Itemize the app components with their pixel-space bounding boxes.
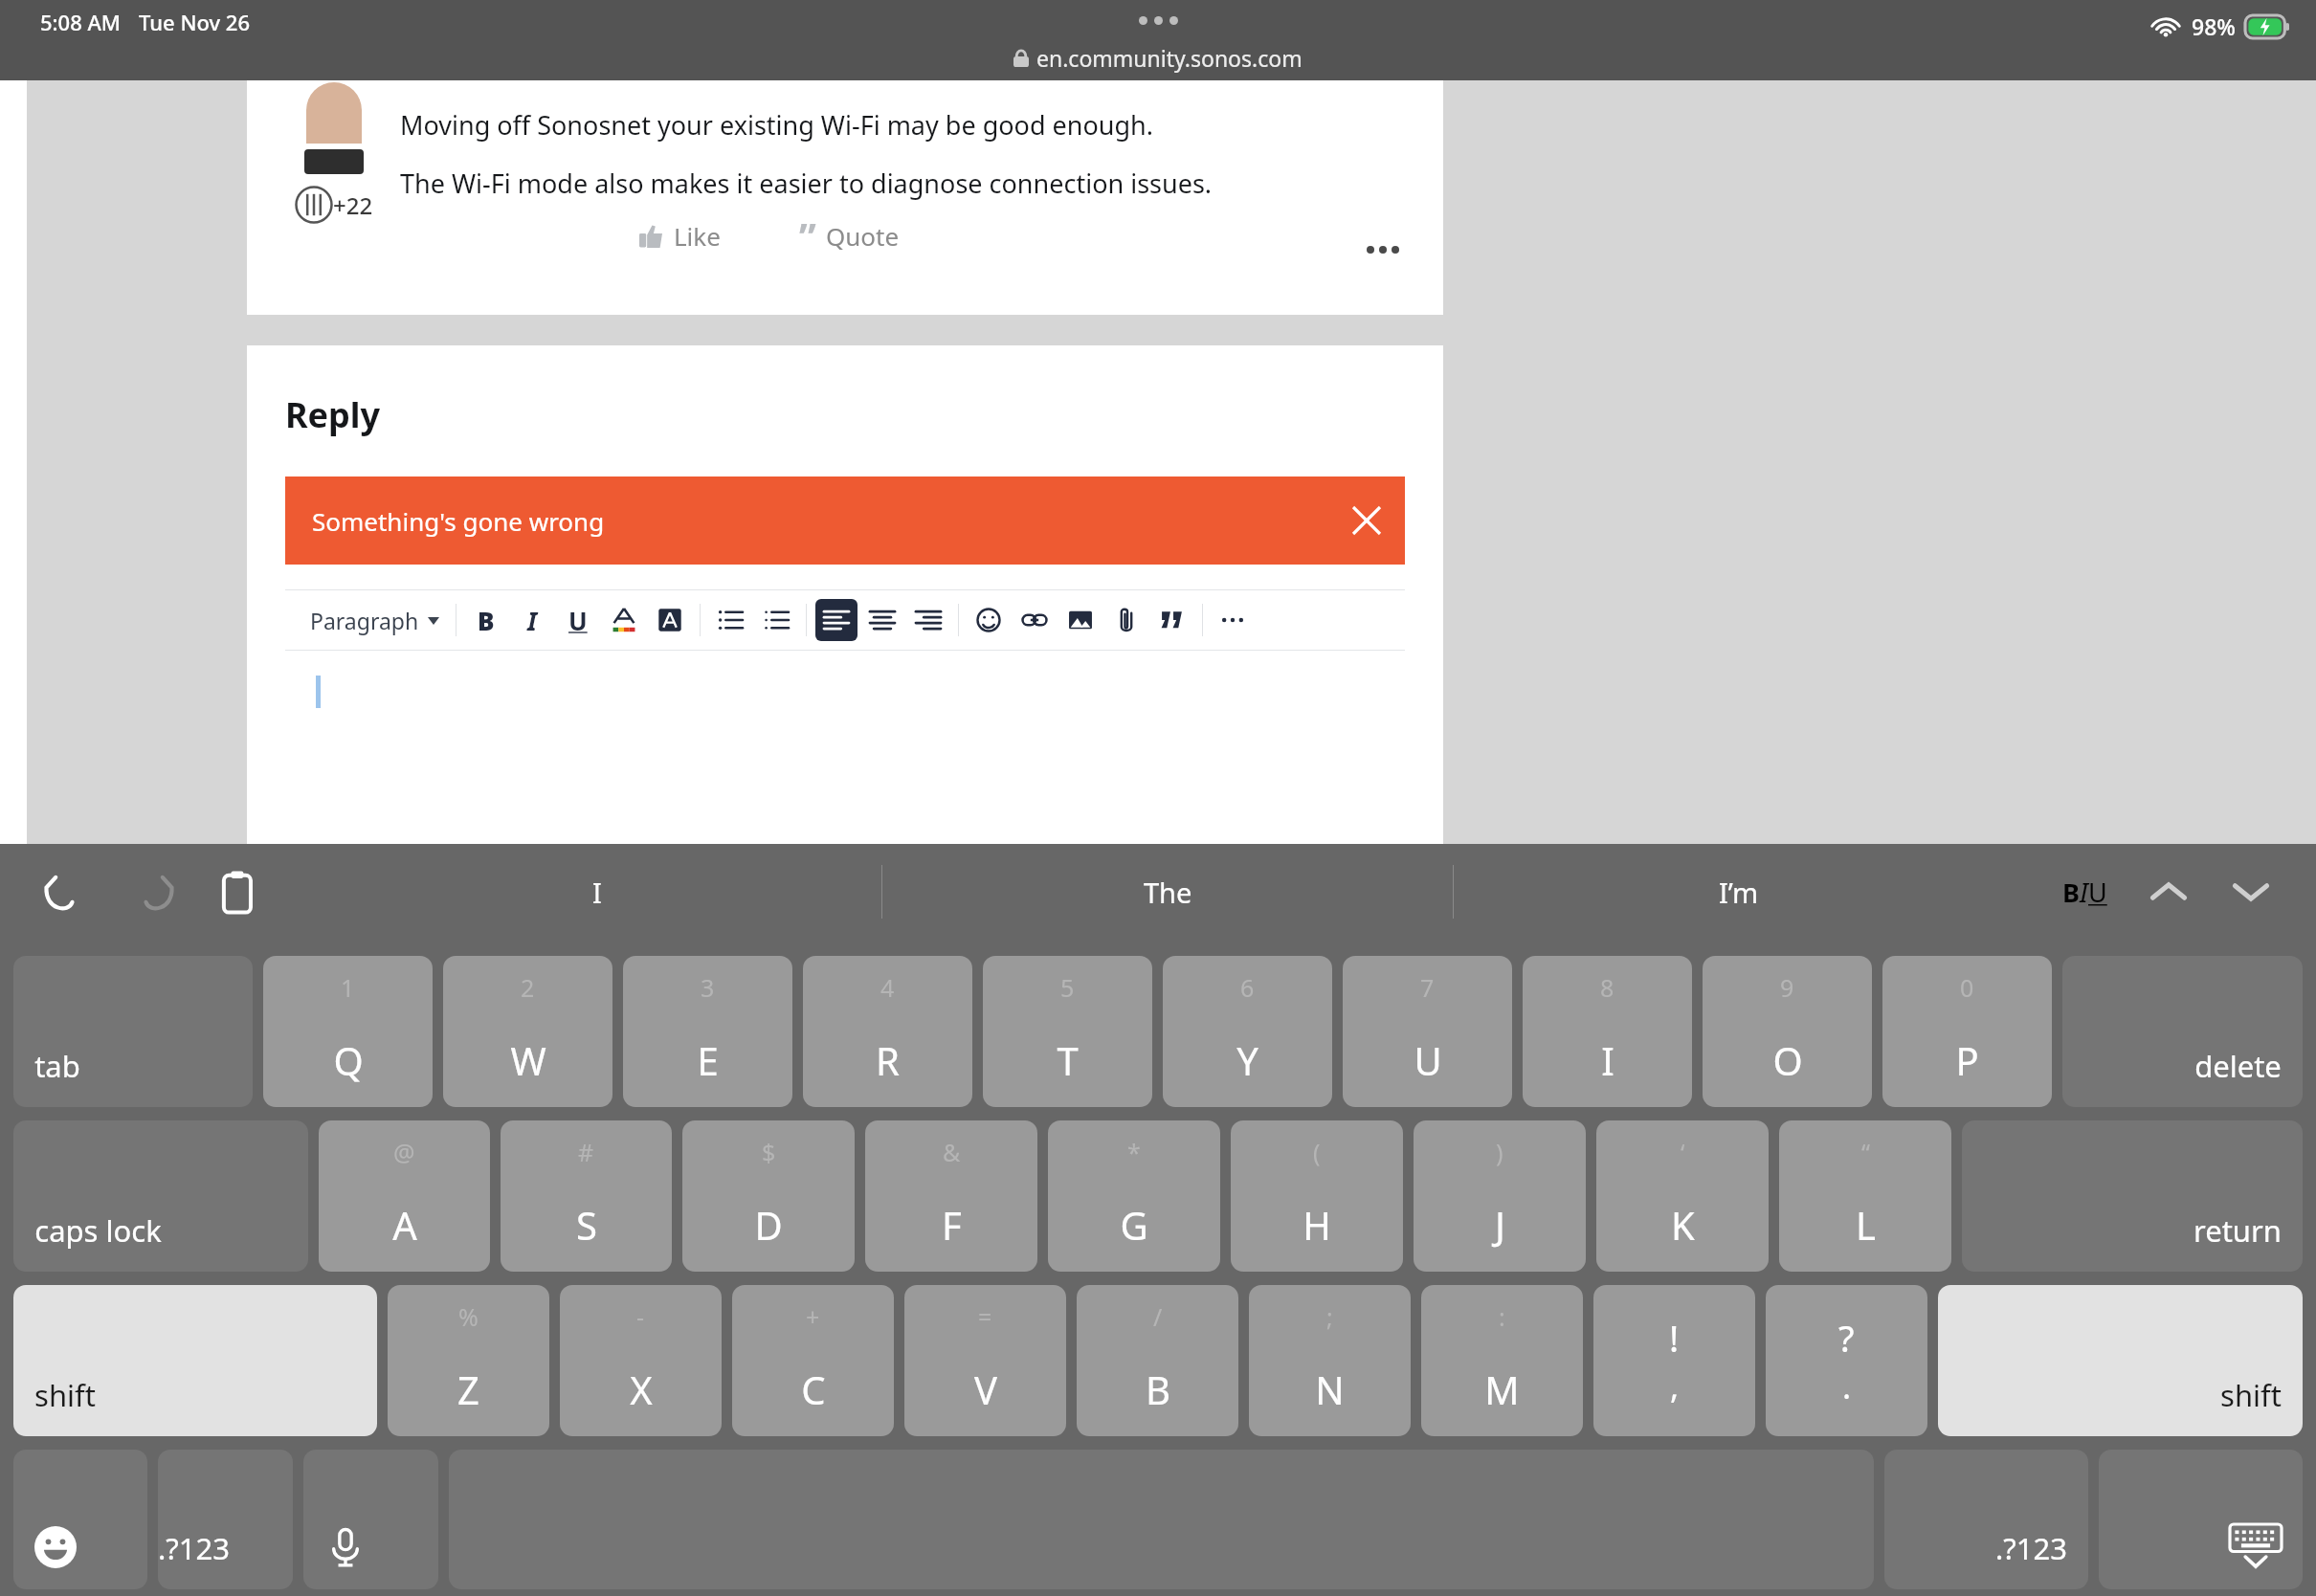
button[interactable]: ! — [1593, 1285, 1755, 1436]
button[interactable]: Emoji — [966, 597, 1012, 643]
button[interactable]: Align center — [859, 597, 905, 643]
staticText: Something's gone wrong — [312, 504, 1328, 538]
button[interactable]: ‘ — [1596, 1120, 1769, 1272]
staticText: shift — [34, 1375, 96, 1415]
button[interactable]: ? — [1766, 1285, 1927, 1436]
button[interactable]: Quote — [1149, 597, 1195, 643]
button[interactable]: ; — [1249, 1285, 1411, 1436]
staticText: Y — [1236, 1034, 1258, 1086]
button[interactable]: tab — [13, 956, 253, 1107]
staticText: 5:08 AM — [40, 8, 122, 36]
staticText: F — [942, 1199, 962, 1251]
button[interactable]: U — [555, 597, 601, 643]
button[interactable]: Text color — [601, 597, 647, 643]
button[interactable]: 0 — [1882, 956, 2052, 1107]
button[interactable]: shift — [1938, 1285, 2303, 1436]
button[interactable]: 1 — [263, 956, 433, 1107]
button[interactable]: Align right — [905, 597, 951, 643]
button[interactable]: 3 — [623, 956, 792, 1107]
button[interactable]: delete — [2062, 956, 2303, 1107]
staticText: ! — [1669, 1313, 1680, 1363]
button[interactable]: Next — [2226, 867, 2276, 917]
staticText: Tue Nov 26 — [139, 8, 250, 36]
button[interactable]: B — [463, 597, 509, 643]
button[interactable]: Attach file — [1103, 597, 1149, 643]
staticText: / — [1153, 1300, 1163, 1333]
button[interactable]: * — [1048, 1120, 1220, 1272]
button[interactable]: caps lock — [13, 1120, 308, 1272]
staticText: - — [636, 1300, 645, 1333]
button[interactable]: kbd — [2099, 1450, 2303, 1589]
button[interactable]: % — [388, 1285, 549, 1436]
button[interactable]: “ — [1779, 1120, 1951, 1272]
staticText: en.community.sonos.com — [1036, 43, 1303, 73]
button[interactable]: Dismiss error — [1328, 490, 1405, 551]
button[interactable]: .?123 — [158, 1450, 293, 1589]
button[interactable]: & — [865, 1120, 1037, 1272]
button[interactable]: @ — [319, 1120, 490, 1272]
button[interactable]: ) — [1414, 1120, 1586, 1272]
button[interactable]: I’m — [1454, 844, 2024, 940]
staticText: Like — [674, 219, 721, 253]
button[interactable]: 2 — [443, 956, 612, 1107]
button[interactable]: shift — [13, 1285, 377, 1436]
button[interactable]: 7 — [1343, 956, 1512, 1107]
staticText: 1 — [341, 971, 355, 1004]
button[interactable]: Paragraph — [301, 606, 449, 635]
button[interactable]: - — [560, 1285, 722, 1436]
button[interactable]: 9 — [1703, 956, 1872, 1107]
button[interactable]: Previous — [2144, 867, 2194, 917]
button[interactable]: I — [312, 844, 881, 940]
staticText: ‘ — [1681, 1136, 1685, 1168]
button[interactable]: / — [1077, 1285, 1238, 1436]
button[interactable]: More — [1210, 597, 1256, 643]
button[interactable]: $ — [682, 1120, 855, 1272]
button[interactable]: Link — [1012, 597, 1058, 643]
button[interactable]: # — [501, 1120, 672, 1272]
button[interactable]: ( — [1231, 1120, 1403, 1272]
button[interactable]: Like — [634, 213, 726, 258]
button[interactable]: : — [1421, 1285, 1583, 1436]
staticText: U — [568, 604, 588, 637]
button[interactable]: ” — [793, 204, 905, 267]
button[interactable]: The — [882, 844, 1453, 940]
staticText: ; — [1326, 1300, 1333, 1333]
button[interactable]: Formatting — [2053, 865, 2117, 920]
button[interactable]: Align left — [813, 597, 859, 643]
button[interactable]: 5 — [983, 956, 1152, 1107]
button[interactable]: I — [509, 597, 555, 643]
staticText: J — [1495, 1199, 1505, 1251]
button[interactable]: + — [732, 1285, 894, 1436]
button[interactable]: Highlight — [647, 597, 693, 643]
button[interactable]: Numbered list — [753, 597, 799, 643]
staticText: return — [2194, 1210, 2282, 1251]
button[interactable]: return — [1962, 1120, 2303, 1272]
staticText: A — [392, 1199, 417, 1251]
staticText: , — [1670, 1364, 1680, 1408]
button[interactable]: Redo — [126, 866, 178, 918]
button[interactable]: .?123 — [1884, 1450, 2088, 1589]
button[interactable]: 8 — [1523, 956, 1692, 1107]
button[interactable]: = — [904, 1285, 1066, 1436]
button[interactable]: mic — [303, 1450, 438, 1589]
button[interactable]: emoji — [13, 1450, 147, 1589]
button[interactable]: More options — [1357, 236, 1409, 263]
button[interactable]: Paste — [212, 866, 264, 918]
staticText: $ — [762, 1136, 776, 1168]
button[interactable]: Undo — [40, 866, 92, 918]
button[interactable]: Image — [1058, 597, 1103, 643]
button[interactable]: 4 — [803, 956, 972, 1107]
staticText: R — [876, 1034, 900, 1086]
staticText: = — [978, 1300, 992, 1333]
staticText: @ — [393, 1136, 415, 1168]
staticText: B — [2062, 875, 2080, 910]
staticText: Z — [457, 1363, 479, 1415]
staticText: H — [1303, 1199, 1331, 1251]
staticText: 8 — [1600, 971, 1615, 1004]
staticText: B — [478, 604, 495, 637]
staticText: + — [806, 1300, 820, 1333]
staticText: 9 — [1780, 971, 1794, 1004]
button[interactable]: 6 — [1163, 956, 1332, 1107]
button[interactable]: Bulleted list — [707, 597, 753, 643]
